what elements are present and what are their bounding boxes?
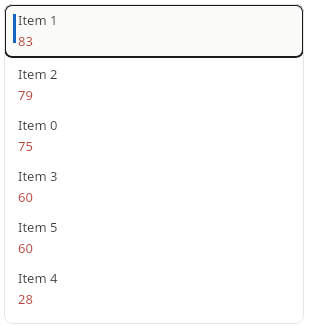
staticText: 60 [18,188,33,206]
staticText: Item 1 [18,11,58,29]
staticText: 83 [18,32,33,50]
button[interactable]: Item 0 [4,109,304,160]
staticText: Item 0 [18,116,58,134]
button[interactable]: Item 3 [4,160,304,211]
staticText: Item 4 [18,269,58,287]
staticText: Item 2 [18,65,58,83]
staticText: Item 5 [18,218,58,236]
button[interactable]: Item 1 [4,4,304,58]
button[interactable]: Item 2 [4,58,304,109]
button[interactable]: Item 5 [4,211,304,262]
staticText: Item 3 [18,167,58,185]
staticText: 75 [18,137,33,155]
staticText: 28 [18,290,33,308]
staticText: 79 [18,86,33,104]
staticText: 60 [18,239,33,257]
button[interactable]: Item 4 [4,262,304,313]
